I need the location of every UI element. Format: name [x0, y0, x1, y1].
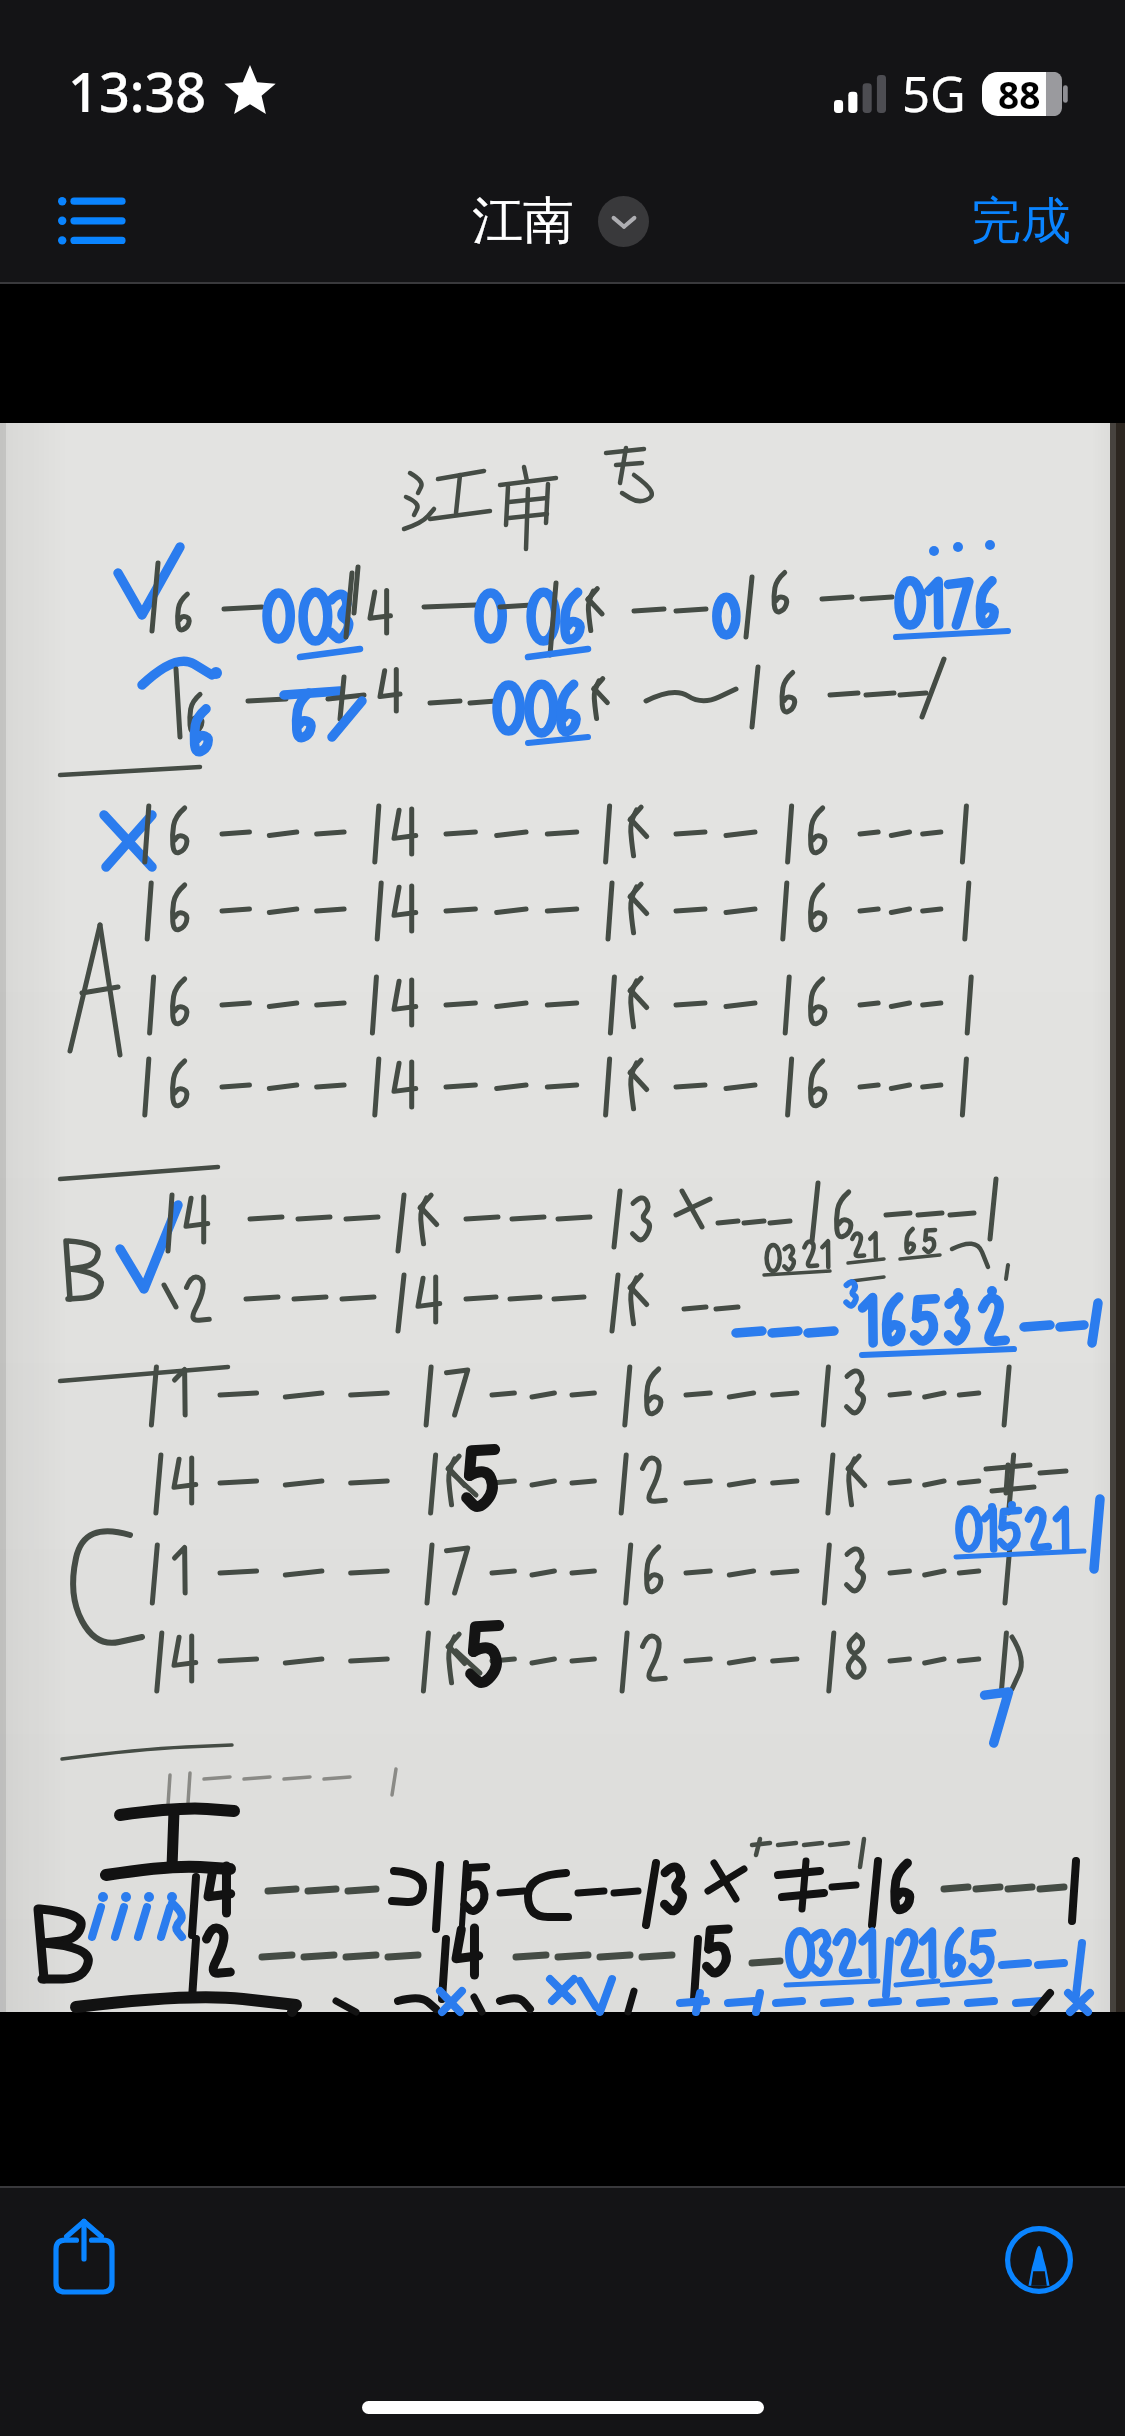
staticText: 5G [902, 60, 966, 127]
button[interactable]: Page image [0, 284, 1125, 2186]
button[interactable]: Markup [979, 2200, 1099, 2320]
staticText: 完成 [971, 190, 1071, 253]
button[interactable]: Share [24, 2198, 144, 2313]
staticText: 88 [998, 69, 1041, 119]
button[interactable]: 完成 [957, 176, 1085, 267]
staticText: 13:38 [68, 54, 207, 128]
staticText: 江南 [472, 189, 574, 253]
button[interactable]: 江南 [466, 183, 655, 259]
button[interactable]: List view [16, 160, 164, 282]
